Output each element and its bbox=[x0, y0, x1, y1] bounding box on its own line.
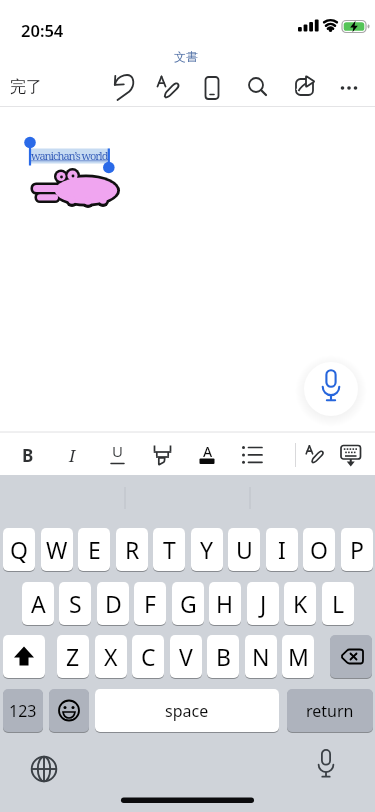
staticText: G bbox=[180, 588, 197, 619]
button[interactable] bbox=[304, 362, 358, 416]
button[interactable]: Q bbox=[3, 528, 35, 571]
button[interactable] bbox=[150, 72, 182, 104]
button[interactable]: J bbox=[247, 582, 279, 625]
button[interactable] bbox=[196, 72, 228, 104]
staticText: L bbox=[332, 588, 345, 619]
staticText: 完了 bbox=[10, 77, 42, 97]
staticText: I bbox=[278, 534, 286, 565]
button[interactable]: K bbox=[284, 582, 316, 625]
staticText: B bbox=[22, 444, 34, 467]
button[interactable]: W bbox=[41, 528, 73, 571]
button[interactable]: wanichan’s world bbox=[31, 148, 108, 163]
staticText: P bbox=[350, 534, 364, 565]
button[interactable] bbox=[109, 72, 141, 104]
staticText: Y bbox=[200, 534, 214, 565]
staticText: U bbox=[112, 441, 123, 461]
button[interactable]: F bbox=[134, 582, 166, 625]
button[interactable]: Z bbox=[57, 635, 89, 678]
button[interactable] bbox=[49, 689, 89, 732]
button[interactable] bbox=[145, 438, 180, 472]
staticText: K bbox=[293, 588, 308, 619]
staticText: W bbox=[46, 534, 68, 565]
button[interactable]: A bbox=[190, 436, 225, 466]
staticText: R bbox=[125, 534, 140, 565]
staticText: X bbox=[104, 641, 118, 672]
staticText: J bbox=[260, 588, 267, 619]
button[interactable]: B bbox=[10, 438, 45, 472]
button[interactable]: 完了 bbox=[3, 72, 49, 102]
button[interactable] bbox=[26, 751, 62, 787]
button[interactable]: Y bbox=[191, 528, 223, 571]
button[interactable]: X bbox=[95, 635, 127, 678]
button[interactable]: V bbox=[170, 635, 202, 678]
button[interactable]: M bbox=[282, 635, 314, 678]
button[interactable] bbox=[333, 72, 365, 104]
staticText: space bbox=[165, 700, 209, 722]
staticText: A bbox=[203, 442, 213, 461]
staticText: Z bbox=[66, 641, 80, 672]
button[interactable] bbox=[288, 72, 320, 104]
staticText: I bbox=[69, 444, 76, 467]
button[interactable]: O bbox=[303, 528, 335, 571]
staticText: F bbox=[144, 588, 156, 619]
button[interactable]: H bbox=[209, 582, 241, 625]
button[interactable]: U bbox=[228, 528, 260, 571]
staticText: T bbox=[163, 534, 176, 565]
staticText: 123 bbox=[9, 700, 37, 722]
button[interactable]: E bbox=[78, 528, 110, 571]
button[interactable]: I bbox=[55, 438, 90, 472]
staticText: Q bbox=[10, 534, 28, 565]
button[interactable]: B bbox=[207, 635, 239, 678]
button[interactable]: return bbox=[287, 689, 373, 732]
staticText: M bbox=[288, 641, 309, 672]
button[interactable]: I bbox=[266, 528, 298, 571]
button[interactable]: S bbox=[59, 582, 91, 625]
staticText: V bbox=[179, 641, 193, 672]
staticText: D bbox=[105, 588, 122, 619]
button[interactable]: D bbox=[97, 582, 129, 625]
button[interactable]: A bbox=[22, 582, 54, 625]
staticText: C bbox=[141, 641, 156, 672]
staticText: O bbox=[310, 534, 328, 565]
button[interactable] bbox=[334, 438, 368, 472]
button[interactable]: R bbox=[116, 528, 148, 571]
staticText: N bbox=[252, 641, 270, 672]
staticText: B bbox=[216, 641, 231, 672]
button[interactable] bbox=[330, 635, 372, 678]
button[interactable] bbox=[3, 635, 45, 678]
button[interactable]: L bbox=[322, 582, 354, 625]
staticText: S bbox=[69, 588, 82, 619]
staticText: U bbox=[236, 534, 253, 565]
staticText: return bbox=[306, 700, 354, 722]
button[interactable]: G bbox=[172, 582, 204, 625]
button[interactable]: U bbox=[100, 436, 135, 466]
button[interactable] bbox=[235, 438, 270, 472]
button[interactable]: T bbox=[153, 528, 185, 571]
button[interactable]: space bbox=[95, 689, 279, 732]
button[interactable]: N bbox=[245, 635, 277, 678]
button[interactable]: 123 bbox=[3, 689, 43, 732]
button[interactable] bbox=[308, 751, 344, 787]
staticText: H bbox=[216, 588, 234, 619]
staticText: 20:54 bbox=[21, 19, 64, 41]
button[interactable] bbox=[242, 72, 274, 104]
button[interactable] bbox=[298, 438, 332, 472]
button[interactable]: C bbox=[132, 635, 164, 678]
button[interactable]: P bbox=[341, 528, 373, 571]
staticText: E bbox=[88, 534, 101, 565]
staticText: A bbox=[31, 588, 46, 619]
staticText: 文書 bbox=[174, 49, 198, 64]
